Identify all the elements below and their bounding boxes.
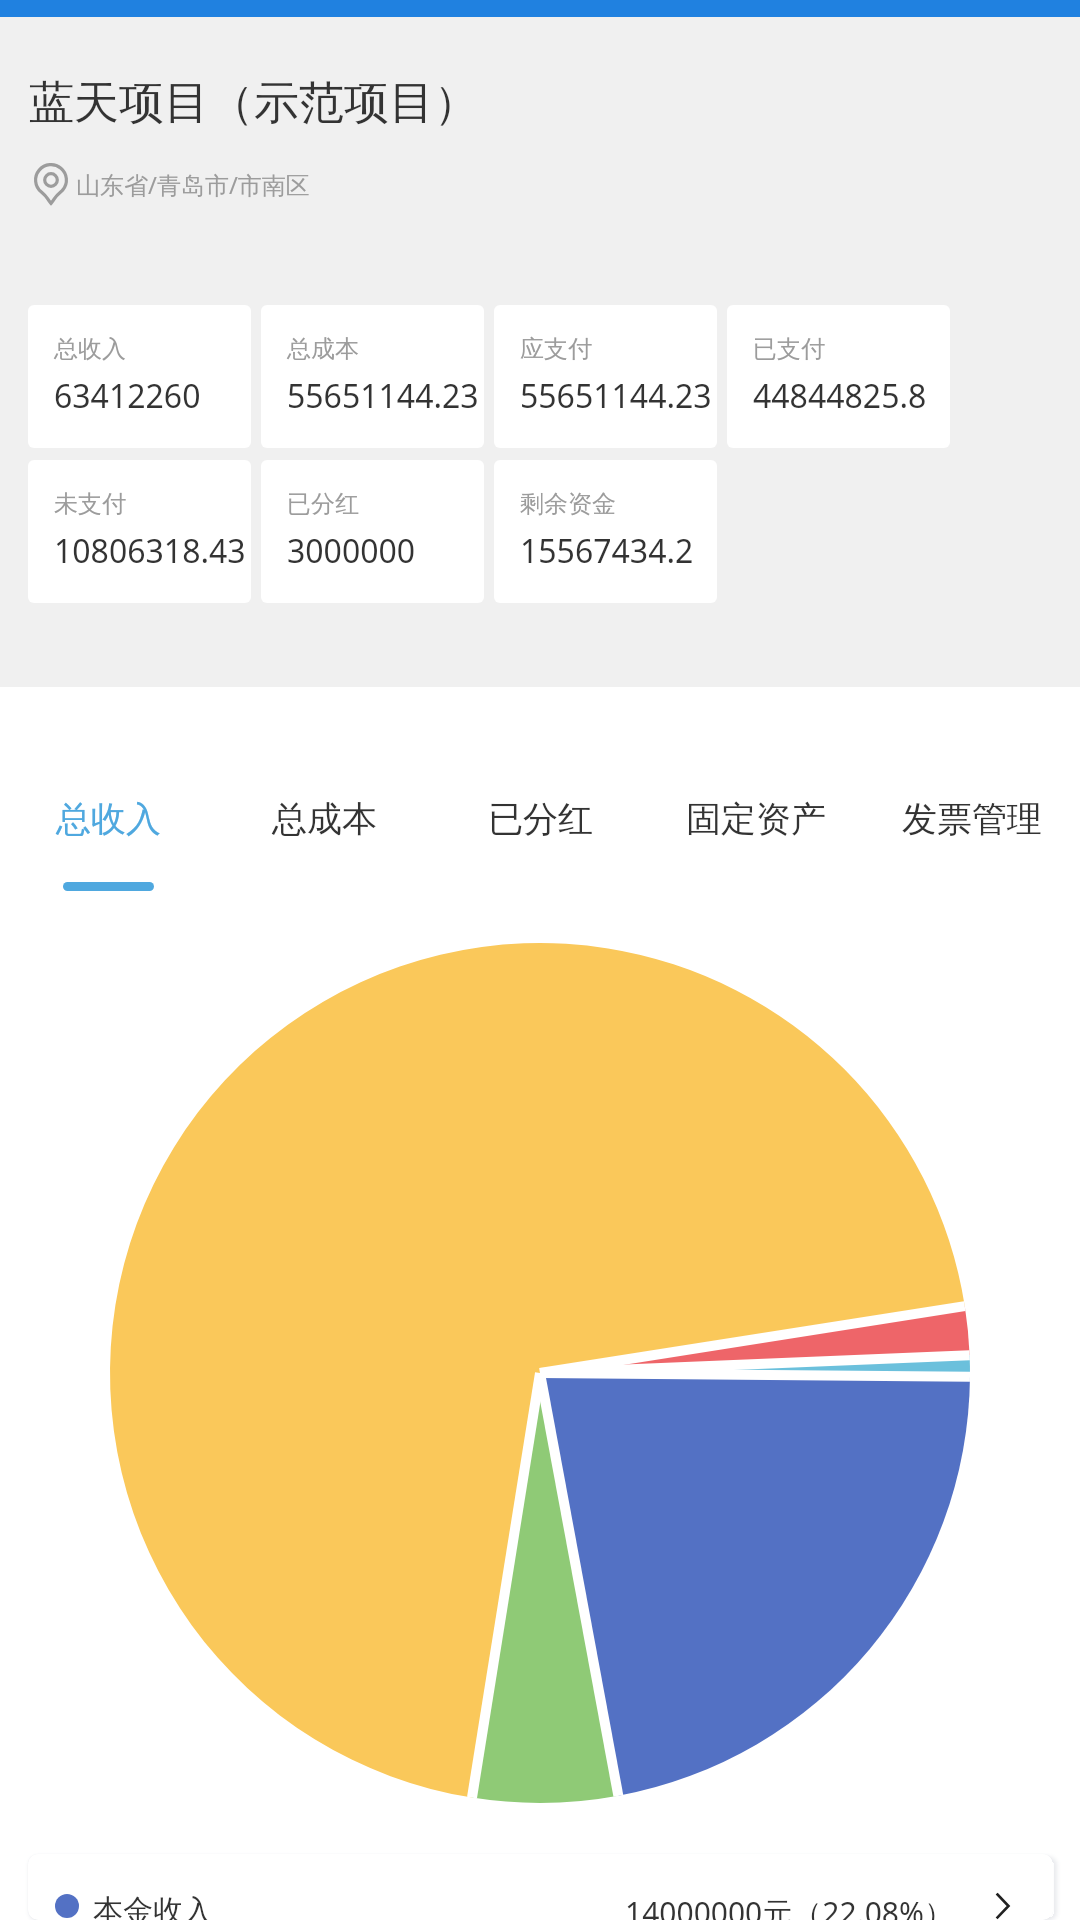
staticText: 总成本 [272,797,377,841]
staticText: 63412260 [54,374,201,418]
staticText: 未支付 [54,489,126,519]
button[interactable]: 蓝天项目（示范项目） [0,17,1080,305]
button[interactable]: 已支付 [727,305,950,448]
staticText: 剩余资金 [520,489,616,519]
button[interactable]: 总成本 [261,305,484,448]
staticText: 55651144.23 [287,374,479,418]
staticText: 44844825.8 [753,374,927,418]
staticText: 应支付 [520,334,592,364]
staticText: 发票管理 [902,797,1042,841]
button[interactable]: 未支付 [28,460,251,603]
staticText: 固定资产 [686,797,826,841]
button[interactable]: 总收入 [0,797,216,891]
staticText: 本金收入 [93,1892,213,1920]
button[interactable]: 已分红 [261,460,484,603]
staticText: 15567434.2 [520,529,694,573]
button[interactable]: 总收入 [28,305,251,448]
button[interactable]: 本金收入 [28,1854,1053,1920]
staticText: 10806318.43 [54,529,246,573]
staticText: 总成本 [287,334,359,364]
staticText: 总收入 [54,334,126,364]
staticText: 总收入 [56,797,161,841]
other: Details [996,1893,1010,1919]
button[interactable]: 固定资产 [648,797,864,891]
button[interactable]: 已分红 [432,797,648,891]
staticText: 已支付 [753,334,825,364]
staticText: 已分红 [488,797,593,841]
button[interactable]: 剩余资金 [494,460,717,603]
button[interactable]: 发票管理 [864,797,1080,891]
button[interactable]: 总成本 [216,797,432,891]
staticText: 3000000 [287,529,416,573]
button[interactable]: 应支付 [494,305,717,448]
staticText: 蓝天项目（示范项目） [29,75,479,132]
staticText: 55651144.23 [520,374,712,418]
staticText: 14000000元（22.08%） [625,1892,954,1920]
staticText: 已分红 [287,489,359,519]
staticText: 山东省/青岛市/市南区 [76,168,310,201]
